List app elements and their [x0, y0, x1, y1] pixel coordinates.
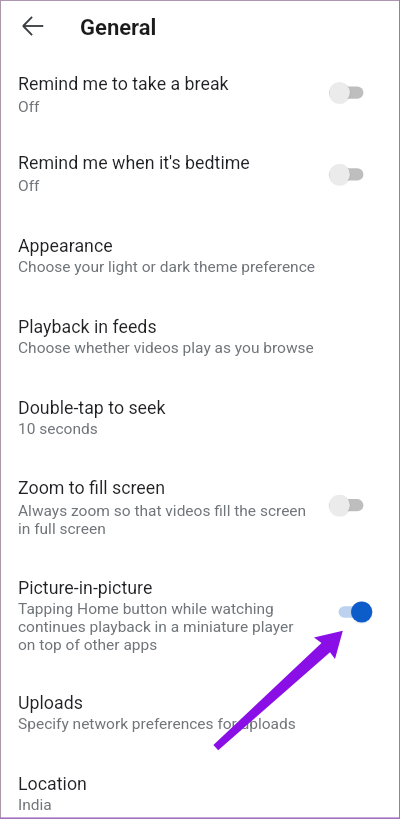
staticText: on top of other apps: [18, 636, 158, 654]
button[interactable]: Picture-in-picture, on: [327, 597, 367, 627]
staticText: Double-tap to seek: [18, 397, 166, 418]
staticText: Remind me when it's bedtime: [18, 152, 250, 173]
button[interactable]: Zoom to fill screen, off: [327, 490, 367, 520]
staticText: Always zoom so that videos fill the scre…: [18, 502, 307, 520]
button[interactable]: Remind me to take a break, off: [327, 78, 367, 108]
staticText: continues playback in a miniature player: [18, 618, 294, 636]
button[interactable]: Location: [0, 760, 400, 819]
staticText: Specify network preferences for uploads: [18, 715, 296, 733]
staticText: Playback in feeds: [18, 316, 157, 337]
staticText: Choose whether videos play as you browse: [18, 339, 314, 357]
button[interactable]: Playback in feeds: [0, 303, 400, 366]
staticText: India: [18, 796, 52, 814]
staticText: General: [80, 15, 157, 41]
staticText: in full screen: [18, 520, 106, 538]
staticText: Zoom to fill screen: [18, 477, 166, 498]
staticText: Tapping Home button while watching: [18, 600, 274, 618]
button[interactable]: Double-tap to seek: [0, 384, 400, 447]
staticText: Location: [18, 773, 87, 794]
staticText: Off: [18, 177, 40, 195]
button[interactable]: Remind me to take a break: [0, 62, 400, 124]
staticText: Remind me to take a break: [18, 73, 229, 94]
button[interactable]: Picture-in-picture: [0, 564, 400, 664]
staticText: Uploads: [18, 692, 83, 713]
staticText: Choose your light or dark theme preferen…: [18, 258, 315, 276]
button[interactable]: Remind me when it's bedtime: [0, 140, 400, 203]
button[interactable]: Zoom to fill screen: [0, 464, 400, 546]
button[interactable]: Remind me when it's bedtime, off: [327, 159, 367, 189]
staticText: 10 seconds: [18, 420, 98, 438]
staticText: Off: [18, 98, 40, 116]
button[interactable]: Uploads: [0, 679, 400, 742]
button[interactable]: Back: [11, 4, 55, 48]
button[interactable]: Appearance: [0, 222, 400, 285]
staticText: Picture-in-picture: [18, 577, 153, 598]
staticText: Appearance: [18, 235, 113, 256]
